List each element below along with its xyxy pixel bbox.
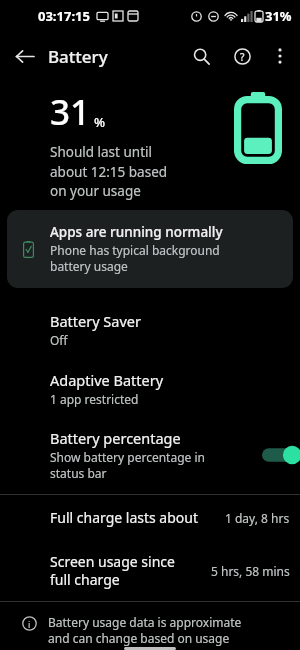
- staticText: Full charge lasts about: [50, 508, 199, 527]
- staticText: 31%: [265, 7, 292, 25]
- staticText: 31: [50, 88, 91, 136]
- staticText: i: [28, 618, 31, 630]
- staticText: Apps are running normally: [50, 223, 223, 241]
- staticText: Off: [50, 332, 68, 348]
- staticText: %: [94, 113, 106, 131]
- staticText: Screen usage since full charge: [50, 552, 175, 589]
- staticText: Battery Saver: [50, 311, 141, 331]
- button[interactable]: Back: [0, 32, 48, 80]
- staticText: Battery: [48, 45, 108, 68]
- button[interactable]: Battery percentage: [0, 418, 300, 494]
- staticText: Should last until about 12:15 based on y…: [50, 143, 168, 200]
- button[interactable]: Full charge lasts about: [0, 495, 300, 540]
- staticText: 1 day, 8 hrs: [225, 510, 290, 526]
- staticText: Adaptive Battery: [50, 370, 164, 390]
- button[interactable]: Apps are running normally: [7, 210, 293, 288]
- button[interactable]: Screen usage since full charge: [0, 540, 300, 601]
- staticText: Show battery percentage in status bar: [50, 449, 205, 482]
- button[interactable]: More options: [262, 38, 298, 74]
- staticText: 1 app restricted: [50, 391, 139, 407]
- button[interactable]: Help: [222, 36, 262, 76]
- other: Battery percentage toggle: [262, 444, 300, 466]
- staticText: Phone has typical background battery usa…: [50, 242, 220, 275]
- button[interactable]: Battery Saver: [0, 300, 300, 359]
- button[interactable]: Adaptive Battery: [0, 359, 300, 418]
- staticText: 5 hrs, 58 mins: [211, 563, 290, 579]
- button[interactable]: Search: [180, 35, 222, 77]
- staticText: 03:17:15: [38, 7, 90, 25]
- staticText: Battery usage data is approximate and ca…: [48, 614, 242, 647]
- staticText: Battery percentage: [50, 428, 181, 448]
- staticText: ?: [240, 50, 245, 64]
